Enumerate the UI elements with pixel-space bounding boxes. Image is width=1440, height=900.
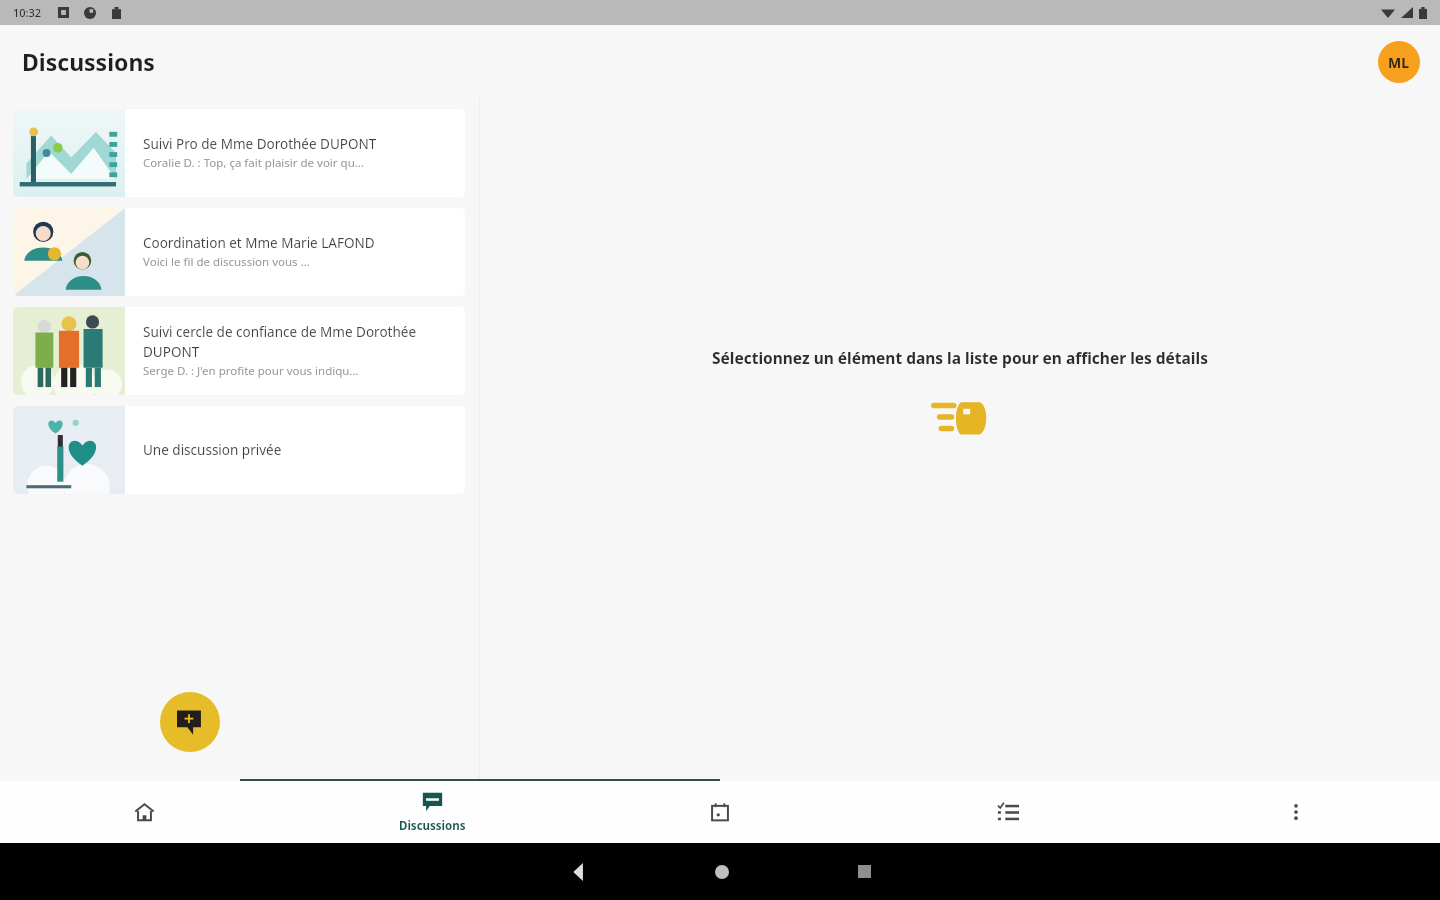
button[interactable]: ML	[1378, 41, 1420, 83]
staticText: Suivi cercle de confiance de Mme Dorothé…	[143, 323, 453, 361]
staticText: Suivi Pro de Mme Dorothée DUPONT	[143, 135, 377, 153]
button[interactable]: Une discussion privée	[13, 406, 465, 494]
button[interactable]: Nouvelle discussion	[160, 692, 220, 752]
button[interactable]: Suivi Pro de Mme Dorothée DUPONT	[13, 109, 465, 197]
staticText: Coordination et Mme Marie LAFOND	[143, 234, 375, 252]
staticText: 10:32	[13, 5, 42, 20]
staticText: Discussions	[399, 818, 466, 834]
staticText: Sélectionnez un élément dans la liste po…	[712, 347, 1208, 368]
button[interactable]: Accueil	[0, 781, 288, 843]
button[interactable]: Suivi cercle de confiance de Mme Dorothé…	[13, 307, 465, 395]
button[interactable]: Agenda	[576, 781, 864, 843]
button[interactable]: Discussions	[288, 781, 576, 843]
staticText: Coralie D. : Top, ça fait plaisir de voi…	[143, 155, 365, 171]
staticText: Serge D. : J'en profite pour vous indiqu…	[143, 363, 359, 379]
staticText: ML	[1388, 53, 1410, 72]
button[interactable]: Plus	[1152, 781, 1440, 843]
staticText: Discussions	[22, 46, 155, 77]
button[interactable]: Coordination et Mme Marie LAFOND	[13, 208, 465, 296]
button[interactable]: Tâches	[864, 781, 1152, 843]
staticText: Une discussion privée	[143, 441, 282, 459]
staticText: Voici le fil de discussion vous ...	[143, 254, 310, 270]
